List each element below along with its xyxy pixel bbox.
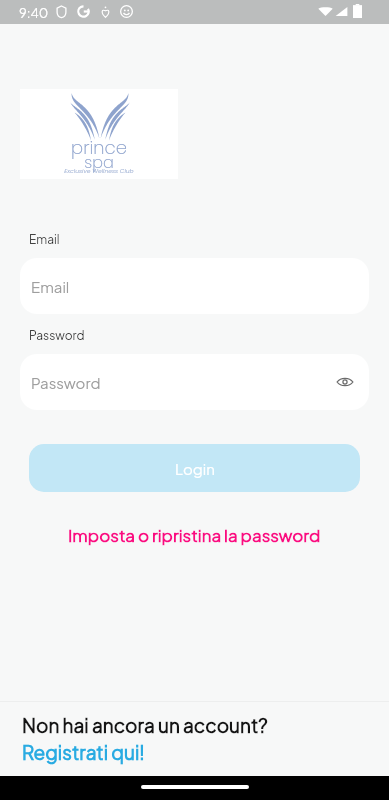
- button[interactable]: Show password: [328, 365, 362, 399]
- staticText: Email: [31, 277, 70, 296]
- staticText: Exclusive Wellness Club: [20, 167, 178, 175]
- staticText: Non hai ancora un account?: [22, 713, 268, 737]
- staticText: Login: [175, 459, 215, 478]
- staticText: Registrati qui!: [22, 740, 145, 764]
- staticText: 9:40: [19, 5, 49, 21]
- staticText: spa: [20, 151, 178, 173]
- button[interactable]: Login: [29, 444, 360, 492]
- button[interactable]: Imposta o ripristina la password: [62, 521, 327, 548]
- button[interactable]: Registrati qui!: [22, 740, 145, 764]
- button[interactable]: Email: [20, 258, 369, 314]
- staticText: Email: [29, 232, 60, 247]
- staticText: Imposta o ripristina la password: [68, 524, 321, 545]
- staticText: prince: [20, 135, 178, 160]
- staticText: Password: [29, 328, 85, 343]
- button[interactable]: Password: [20, 354, 369, 410]
- staticText: Password: [31, 373, 101, 392]
